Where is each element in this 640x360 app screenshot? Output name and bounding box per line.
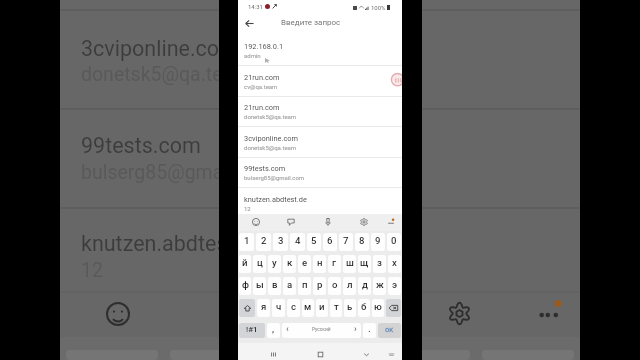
button[interactable]: !#1 (239, 323, 265, 338)
button[interactable]: 7 (339, 233, 353, 251)
staticText: 21run.com (244, 103, 280, 112)
button[interactable]: 1 (239, 233, 254, 251)
button[interactable]: Voice input (322, 216, 334, 228)
staticText: м (304, 301, 312, 312)
staticText: 1 (244, 235, 250, 246)
button[interactable]: 8 (355, 233, 369, 251)
staticText: donetsk5@qa.team (244, 113, 297, 120)
staticText: а (287, 279, 293, 290)
button[interactable]: , (267, 323, 280, 338)
button[interactable]: м (302, 299, 314, 317)
staticText: 9 (375, 235, 381, 246)
button[interactable]: knutzen.abdtest.de (238, 188, 402, 219)
button[interactable]: я (257, 299, 270, 317)
button[interactable]: е (298, 255, 311, 273)
button[interactable]: и (316, 299, 328, 317)
button[interactable]: 4 (290, 233, 305, 251)
button[interactable]: д (358, 277, 371, 295)
button[interactable]: к (283, 255, 296, 273)
staticText: . (368, 323, 371, 334)
button[interactable]: . (363, 323, 376, 338)
button[interactable]: ф (239, 277, 251, 295)
staticText: л (347, 279, 353, 290)
staticText: 192.168.0.1 (244, 42, 284, 51)
button[interactable]: 3 (273, 233, 288, 251)
button[interactable]: с (287, 299, 300, 317)
button[interactable]: 3cviponline.com (238, 127, 402, 158)
button[interactable]: г (328, 255, 341, 273)
staticText: ч (276, 301, 282, 312)
button[interactable]: ш (343, 255, 356, 273)
staticText: и (319, 301, 325, 312)
button[interactable]: ь (344, 299, 356, 317)
button[interactable]: б (358, 299, 370, 317)
button[interactable]: в (268, 277, 281, 295)
staticText: 5 (311, 235, 317, 246)
staticText: н (317, 257, 323, 268)
button[interactable]: Back (242, 16, 257, 31)
staticText: 100% (371, 4, 386, 11)
button[interactable]: р (313, 277, 326, 295)
button[interactable]: у (268, 255, 281, 273)
button[interactable]: ц (253, 255, 266, 273)
button[interactable]: Emoji (250, 216, 262, 228)
button[interactable]: More options (385, 216, 397, 228)
staticText: ц (257, 257, 263, 268)
staticText: ш (346, 257, 354, 268)
button[interactable]: Menu (385, 348, 397, 360)
button[interactable]: Recents (267, 348, 279, 360)
staticText: 4 (295, 235, 301, 246)
button[interactable]: 0 (387, 233, 401, 251)
button[interactable]: 21run.com (238, 96, 402, 127)
button[interactable]: й (239, 255, 251, 273)
button[interactable]: 5 (307, 233, 321, 251)
button[interactable]: Shift (239, 299, 255, 317)
staticText: 14:31 (248, 3, 263, 10)
button[interactable]: 192.168.0.1 (238, 35, 402, 66)
button[interactable]: 6 (323, 233, 337, 251)
staticText: э (392, 279, 398, 290)
staticText: ь (347, 301, 353, 312)
button[interactable]: Keyboard settings (358, 216, 370, 228)
button[interactable]: Home (314, 348, 326, 360)
button[interactable]: Backspace (386, 299, 401, 317)
button[interactable]: Space (282, 323, 361, 338)
staticText: 8 (359, 235, 365, 246)
staticText: 99tests.com (81, 133, 201, 158)
staticText: п (302, 279, 308, 290)
staticText: cv@qa.team (244, 83, 278, 90)
button[interactable]: 2 (256, 233, 271, 251)
staticText: 6 (327, 235, 333, 246)
button[interactable]: з (373, 255, 386, 273)
staticText: щ (360, 257, 369, 268)
button[interactable]: т (330, 299, 342, 317)
staticText: knutzen.abdtest.de (81, 231, 264, 256)
button[interactable]: щ (358, 255, 371, 273)
button[interactable]: 21run.com (238, 66, 402, 97)
button[interactable]: ж (373, 277, 386, 295)
button[interactable]: э (388, 277, 401, 295)
button[interactable]: ю (372, 299, 384, 317)
staticText: 3 (278, 235, 284, 246)
staticText: knutzen.abdtest.de (244, 195, 307, 204)
staticText: в (272, 279, 278, 290)
button[interactable]: п (298, 277, 311, 295)
button[interactable]: Stickers (285, 216, 297, 228)
staticText: д (362, 279, 368, 290)
button[interactable]: а (283, 277, 296, 295)
button[interactable]: о (328, 277, 341, 295)
staticText: б (361, 301, 367, 312)
button[interactable]: 99tests.com (238, 157, 402, 188)
staticText: Введите запрос (281, 18, 341, 27)
button[interactable]: 9 (371, 233, 385, 251)
button[interactable]: н (313, 255, 326, 273)
button[interactable]: л (343, 277, 356, 295)
staticText: я (261, 301, 267, 312)
button[interactable]: ч (272, 299, 285, 317)
button[interactable]: х (388, 255, 401, 273)
staticText: о (332, 279, 338, 290)
button[interactable]: ы (253, 277, 266, 295)
button[interactable]: Hide keyboard (360, 348, 372, 360)
button[interactable]: OK (378, 323, 401, 338)
staticText: 0 (391, 235, 397, 246)
